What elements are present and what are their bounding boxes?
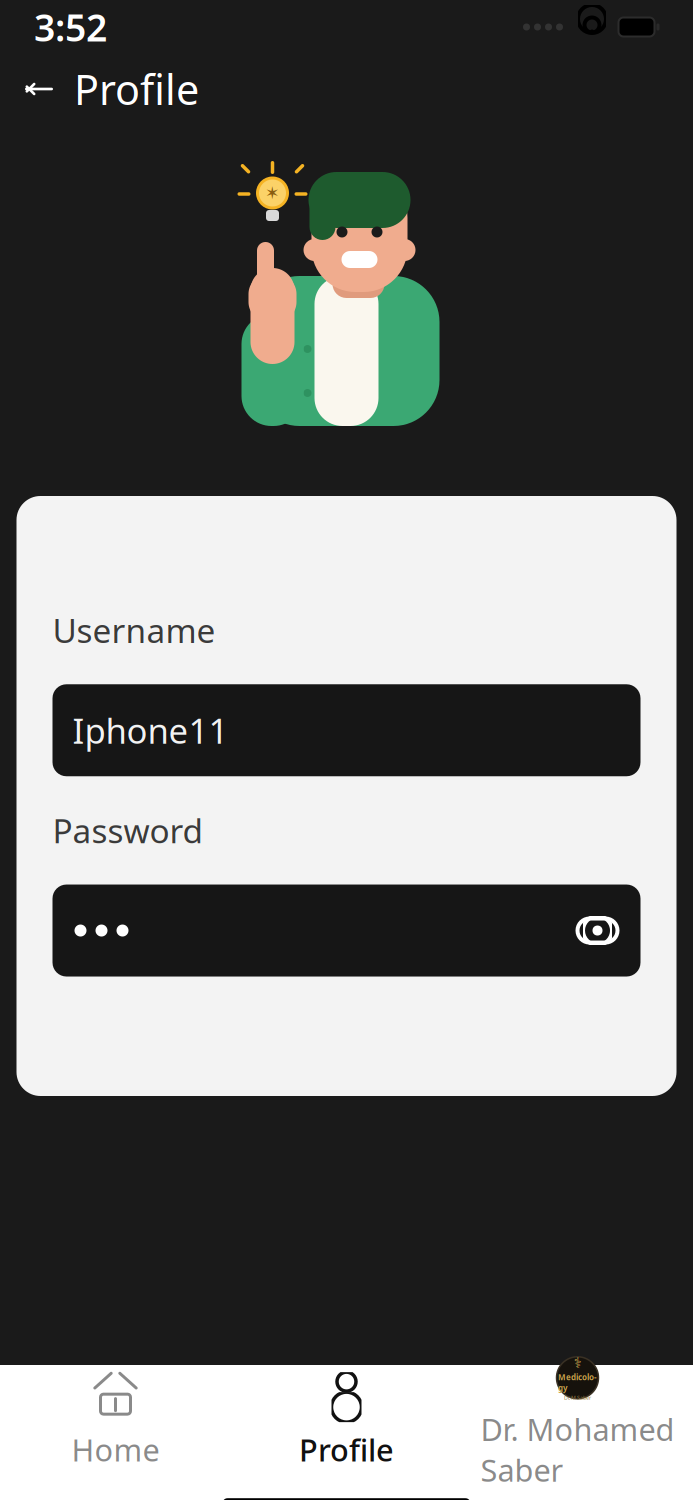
button[interactable]: Back xyxy=(22,72,56,106)
staticText: ⚕ xyxy=(573,1354,581,1371)
button[interactable]: Profile xyxy=(231,1377,462,1470)
staticText: Password xyxy=(52,808,203,853)
staticText: Home xyxy=(71,1429,159,1470)
button[interactable]: Home xyxy=(0,1377,231,1470)
staticText: 3:52 xyxy=(34,2,107,52)
staticText: Profile xyxy=(299,1429,394,1470)
staticText: Dr. M Saber xyxy=(564,1394,591,1401)
button[interactable]: ⚕ xyxy=(462,1357,693,1490)
staticText: Medicology xyxy=(558,1372,597,1393)
staticText: ✶ xyxy=(265,183,280,203)
staticText: Username xyxy=(52,608,215,652)
button[interactable]: Iphone11 xyxy=(52,684,640,776)
staticText: Dr. Mohamed Saber xyxy=(480,1409,674,1490)
staticText: Iphone11 xyxy=(72,707,228,753)
staticText: Profile xyxy=(74,62,199,116)
button[interactable] xyxy=(52,884,640,976)
